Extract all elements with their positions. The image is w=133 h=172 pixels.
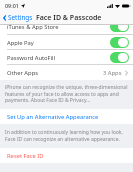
staticText: Password AutoFill	[7, 54, 56, 62]
button[interactable]: Settings	[0, 13, 35, 22]
staticText: Apple Pay	[7, 39, 34, 47]
button[interactable]: Toggle	[110, 52, 129, 63]
staticText: Set Up an Alternative Appearance	[7, 113, 99, 121]
staticText: Other Apps	[7, 69, 38, 77]
button[interactable]: Toggle	[110, 21, 129, 32]
button[interactable]: Reset Face ID	[0, 148, 133, 163]
staticText: iTunes & App Store	[7, 23, 59, 31]
button[interactable]: Toggle	[110, 37, 129, 48]
staticText: In addition to continuously learning how…	[5, 129, 131, 142]
button[interactable]: iTunes & App Store	[0, 18, 133, 35]
staticText: Settings	[8, 13, 33, 22]
staticText: Reset Face ID	[7, 152, 44, 160]
staticText: iPhone can recognize the unique, three-d…	[5, 84, 131, 103]
button[interactable]: Password AutoFill	[0, 50, 133, 65]
staticText: 3 Apps	[103, 69, 122, 77]
staticText: 09:01	[5, 2, 19, 9]
button[interactable]: Other Apps	[0, 65, 133, 80]
button[interactable]: Apple Pay	[0, 35, 133, 50]
button[interactable]: Set Up an Alternative Appearance	[0, 109, 133, 124]
staticText: Face ID & Passcode	[36, 13, 102, 23]
